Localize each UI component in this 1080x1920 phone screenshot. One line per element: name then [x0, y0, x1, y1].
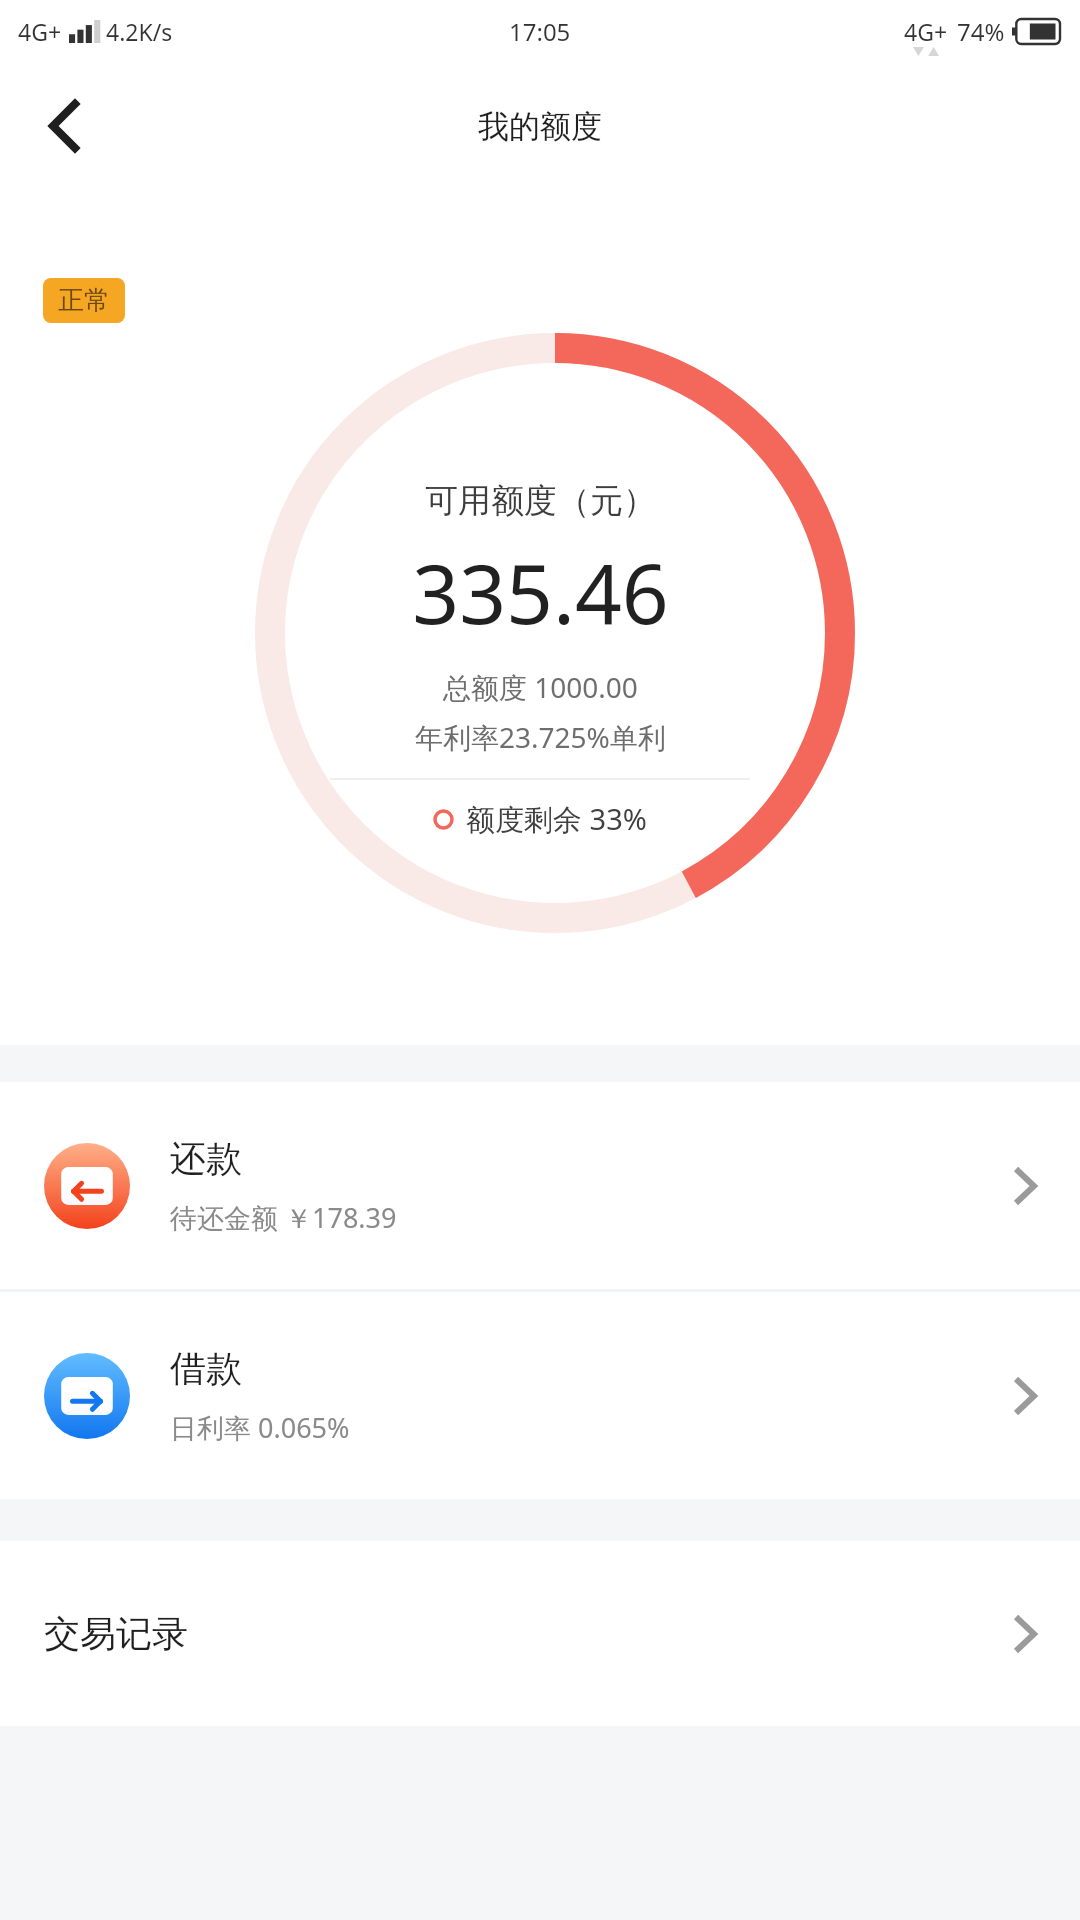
button[interactable]: 借款 [0, 1292, 1080, 1499]
staticText: 总额度 1000.00 [443, 668, 638, 706]
staticText: 正常 [58, 284, 110, 317]
staticText: 74% [957, 15, 1005, 48]
staticText: 4G+ [18, 16, 62, 47]
staticText: 4.2K/s [106, 16, 173, 47]
staticText: 额度剩余 33% [466, 799, 647, 839]
staticText: 335.46 [412, 536, 669, 648]
button[interactable]: 正常 [43, 278, 125, 323]
staticText: 17:05 [509, 15, 571, 48]
button[interactable]: 还款 [0, 1082, 1080, 1289]
button[interactable]: 交易记录 [0, 1541, 1080, 1726]
button[interactable]: Back [24, 86, 104, 166]
staticText: 年利率23.725%单利 [415, 718, 666, 756]
staticText: 待还金额 ￥178.39 [170, 1199, 397, 1236]
staticText: 可用额度（元） [425, 480, 656, 522]
staticText: 日利率 0.065% [170, 1409, 350, 1446]
staticText: 我的额度 [478, 107, 602, 146]
staticText: 还款 [170, 1136, 242, 1181]
staticText: 4G+ [904, 16, 948, 47]
staticText: 借款 [170, 1346, 242, 1391]
staticText: 交易记录 [44, 1611, 188, 1656]
